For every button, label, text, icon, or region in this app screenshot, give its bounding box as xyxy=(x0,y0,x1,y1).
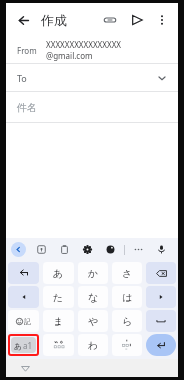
staticText: た xyxy=(53,291,64,304)
button[interactable]: Theme xyxy=(102,241,119,258)
button[interactable]: From xyxy=(6,37,178,63)
button[interactable]: More options xyxy=(151,9,173,31)
button[interactable]: 件名 xyxy=(6,92,178,122)
button[interactable]: Voice input xyxy=(153,241,170,258)
button[interactable]: mode xyxy=(11,337,36,353)
button[interactable]: Clipboard xyxy=(56,241,73,258)
button[interactable]: del xyxy=(146,262,176,284)
staticText: あ xyxy=(14,341,23,351)
button[interactable]: enter xyxy=(146,334,176,356)
staticText: さ xyxy=(122,267,133,280)
button[interactable]: ま xyxy=(43,310,74,332)
staticText: To xyxy=(17,72,27,84)
staticText: や xyxy=(88,315,99,328)
button[interactable]: は xyxy=(112,286,142,308)
button[interactable]: Collapse toolbar xyxy=(11,242,26,257)
staticText: XXXXXXXXXXXXXXXX @gmail.com xyxy=(46,39,167,61)
button[interactable]: More xyxy=(130,241,147,258)
button[interactable]: emoji xyxy=(8,310,39,332)
button[interactable]: To xyxy=(6,64,178,91)
staticText: 件名 xyxy=(17,101,37,114)
button[interactable]: space xyxy=(146,310,176,332)
staticText: ま xyxy=(53,315,64,328)
staticText: な xyxy=(88,291,99,304)
staticText: 記 xyxy=(24,317,31,326)
button[interactable]: ら xyxy=(112,310,142,332)
staticText: か xyxy=(88,267,99,280)
button[interactable]: わ xyxy=(78,334,108,356)
button[interactable]: undo xyxy=(8,262,39,284)
button[interactable]: あ xyxy=(43,262,74,284)
button[interactable]: left xyxy=(8,286,39,308)
staticText: 作成 xyxy=(41,12,67,28)
button[interactable]: Send xyxy=(126,9,148,31)
button[interactable]: な xyxy=(78,286,108,308)
staticText: a1 xyxy=(23,340,33,351)
button[interactable]: Back xyxy=(18,361,32,375)
button[interactable]: punct xyxy=(112,334,142,356)
button[interactable]: dakuten xyxy=(43,334,74,356)
button[interactable]: Back xyxy=(11,8,35,32)
button[interactable]: た xyxy=(43,286,74,308)
staticText: は xyxy=(122,291,133,304)
button[interactable]: Attach xyxy=(99,9,121,31)
staticText: ら xyxy=(122,315,133,328)
button[interactable]: さ xyxy=(112,262,142,284)
button[interactable]: Settings xyxy=(79,241,96,258)
button[interactable]: か xyxy=(78,262,108,284)
staticText: From xyxy=(17,45,37,56)
staticText: わ xyxy=(88,339,99,352)
button[interactable]: Stickers xyxy=(33,241,50,258)
staticText: あ xyxy=(53,267,64,280)
button[interactable]: right xyxy=(146,286,176,308)
button[interactable]: や xyxy=(78,310,108,332)
